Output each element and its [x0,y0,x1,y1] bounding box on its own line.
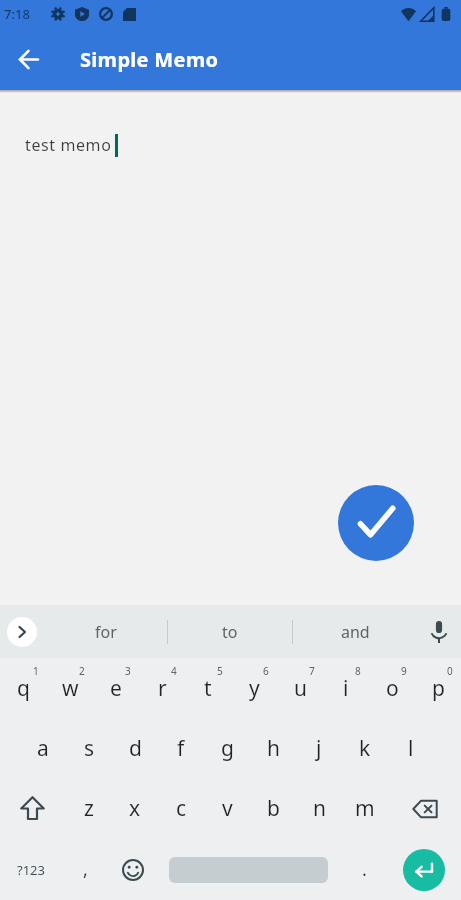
staticText: to [222,621,238,643]
staticText: k [359,734,371,763]
staticText: d [129,734,142,763]
staticText: c [176,794,187,823]
button[interactable] [109,839,156,900]
button[interactable] [387,839,461,900]
button[interactable]: h [250,718,296,778]
button[interactable]: j [296,718,342,778]
staticText: x [129,794,141,823]
staticText: 7 [309,664,315,678]
staticText: 0 [447,664,453,678]
staticText: y [249,674,260,703]
staticText: test memo [25,134,112,156]
button[interactable]: for [44,605,167,658]
button[interactable]: f [158,718,204,778]
staticText: r [158,674,167,703]
staticText: for [95,621,117,643]
staticText: p [432,674,445,703]
button[interactable]: e [93,658,139,718]
staticText: 6 [263,664,269,678]
staticText: 2 [79,664,85,678]
button[interactable]: m [342,778,388,839]
button[interactable]: a [19,718,66,778]
staticText: 8 [355,664,361,678]
button[interactable]: x [112,778,158,839]
staticText: 5 [217,664,223,678]
staticText: 9 [401,664,407,678]
staticText: h [267,734,280,763]
button[interactable] [0,778,65,839]
staticText: e [110,674,122,703]
staticText: m [355,794,375,823]
button[interactable]: ?123 [0,839,62,900]
button[interactable]: , [62,839,109,900]
button[interactable] [388,778,461,839]
staticText: 7:18 [4,5,30,23]
staticText: l [408,734,414,763]
staticText: g [221,734,234,763]
staticText: ?123 [17,861,45,879]
staticText: . [362,857,367,882]
button[interactable]: r [139,658,185,718]
button[interactable]: c [158,778,204,839]
staticText: u [294,674,307,703]
staticText: , [83,857,88,882]
button[interactable] [0,605,44,658]
staticText: and [341,621,370,643]
staticText: b [267,794,280,823]
button[interactable]: g [204,718,250,778]
button[interactable]: o [369,658,415,718]
button[interactable]: l [388,718,434,778]
button[interactable]: y [231,658,277,718]
button[interactable]: to [168,605,292,658]
button[interactable] [156,839,341,900]
staticText: i [343,674,349,703]
button[interactable] [338,485,414,561]
staticText: t [204,674,212,703]
staticText: n [313,794,326,823]
staticText: f [177,734,185,763]
staticText: j [316,734,322,763]
staticText: w [62,674,79,703]
button[interactable]: z [65,778,112,839]
button[interactable]: d [112,718,158,778]
button[interactable]: v [204,778,250,839]
button[interactable]: w [47,658,93,718]
button[interactable]: s [66,718,112,778]
button[interactable] [417,605,461,658]
button[interactable]: k [342,718,388,778]
button[interactable]: and [293,605,417,658]
button[interactable]: i [323,658,369,718]
staticText: Simple Memo [80,46,219,73]
staticText: q [17,674,30,703]
staticText: 1 [33,664,39,678]
button[interactable]: u [277,658,323,718]
button[interactable]: n [296,778,342,839]
button[interactable]: p [415,658,461,718]
staticText: s [84,734,95,763]
button[interactable]: b [250,778,296,839]
staticText: 4 [171,664,177,678]
button[interactable]: . [341,839,387,900]
button[interactable] [403,849,445,891]
staticText: 3 [125,664,131,678]
staticText: o [386,674,399,703]
button[interactable]: q [0,658,47,718]
staticText: a [37,734,49,763]
staticText: v [222,794,233,823]
staticText: z [84,794,94,823]
button[interactable]: t [185,658,231,718]
button[interactable] [0,31,56,87]
